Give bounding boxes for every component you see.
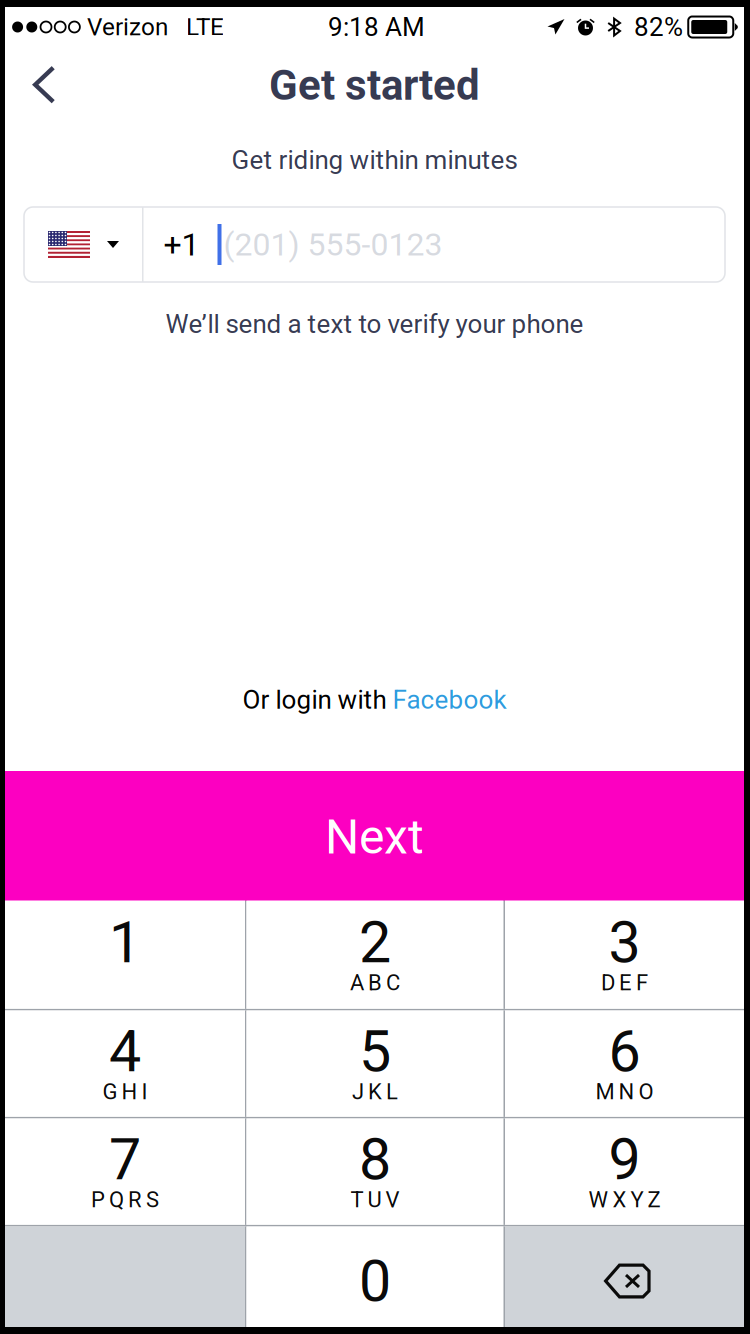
button[interactable]: Back	[5, 47, 86, 117]
staticText: (201) 555-0123	[223, 226, 442, 263]
button[interactable]: 1	[5, 900, 245, 1009]
staticText: Verizon	[87, 13, 168, 41]
staticText: 5	[359, 1018, 391, 1085]
button[interactable]: 3	[505, 900, 744, 1009]
staticText: D E F	[601, 970, 648, 996]
staticText: 6	[608, 1018, 640, 1085]
button[interactable]: 4	[5, 1010, 245, 1117]
button[interactable]: 9	[505, 1118, 744, 1225]
staticText: 2	[359, 909, 391, 976]
staticText: Get started	[269, 61, 480, 110]
staticText: 8	[359, 1126, 391, 1193]
staticText: A B C	[350, 970, 400, 996]
button[interactable]: Select country code	[24, 207, 142, 282]
staticText: 1	[109, 909, 141, 976]
button[interactable]: 8	[246, 1118, 503, 1225]
staticText: G H I	[102, 1079, 147, 1105]
staticText: Facebook	[392, 684, 506, 715]
staticText: Get riding within minutes	[231, 145, 517, 175]
staticText: 9:18 AM	[328, 12, 425, 42]
staticText: 82%	[634, 12, 683, 42]
button[interactable]: Blank	[5, 1226, 245, 1327]
button[interactable]: Delete	[505, 1226, 744, 1327]
staticText: 4	[109, 1018, 141, 1085]
staticText: M N O	[595, 1079, 653, 1105]
staticText: P Q R S	[91, 1187, 159, 1213]
staticText: +1	[163, 226, 199, 263]
button[interactable]: 5	[246, 1010, 503, 1117]
staticText: LTE	[186, 13, 224, 41]
button[interactable]: Facebook	[392, 684, 506, 715]
button[interactable]: 2	[246, 900, 503, 1009]
staticText: 9	[608, 1126, 640, 1193]
button[interactable]: 6	[505, 1010, 744, 1117]
staticText: Next	[325, 809, 424, 865]
staticText: 3	[608, 909, 640, 976]
staticText: W X Y Z	[588, 1187, 660, 1213]
staticText: 0	[359, 1248, 391, 1315]
staticText: We’ll send a text to verify your phone	[165, 309, 583, 339]
button[interactable]: 7	[5, 1118, 245, 1225]
button[interactable]: Next	[5, 771, 744, 901]
staticText: Or login with	[242, 684, 392, 715]
staticText: T U V	[350, 1187, 399, 1213]
staticText: J K L	[352, 1079, 398, 1105]
staticText: 7	[109, 1126, 141, 1193]
button[interactable]: 0	[246, 1226, 503, 1327]
